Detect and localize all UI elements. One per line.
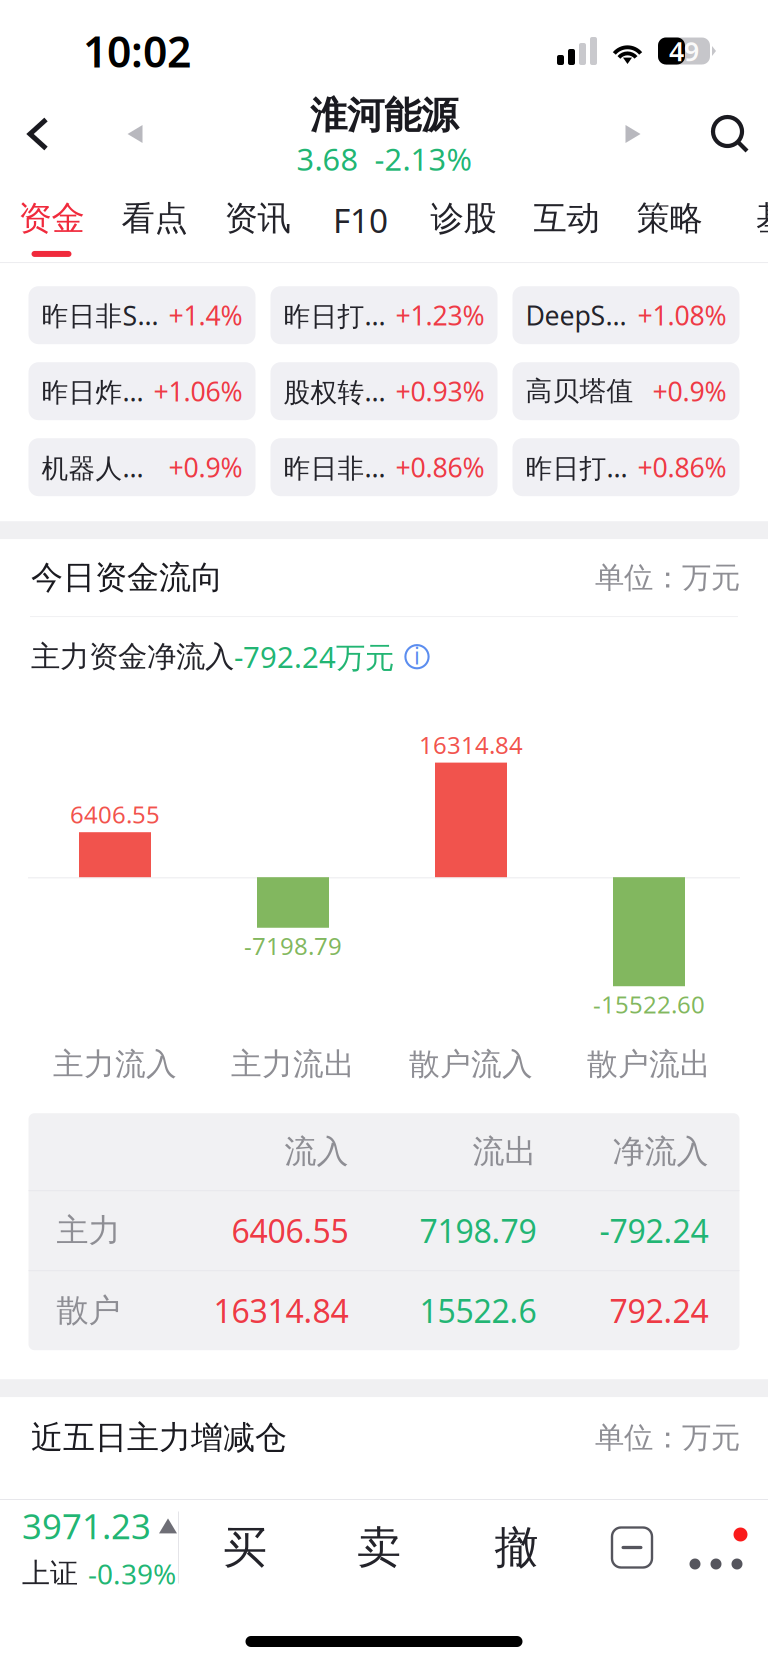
button[interactable]: 更多 bbox=[678, 1500, 756, 1595]
staticText: +0.86% bbox=[395, 449, 484, 485]
staticText: 策略 bbox=[636, 198, 702, 239]
staticText: 机器人概念 bbox=[41, 449, 163, 485]
staticText: +0.93% bbox=[395, 373, 484, 409]
staticText: -15522.60 bbox=[593, 988, 705, 1020]
staticText: 流入 bbox=[284, 1132, 348, 1171]
staticText: 诊股 bbox=[430, 198, 496, 239]
staticText: 看点 bbox=[121, 198, 187, 239]
staticText: DeepS... bbox=[525, 297, 626, 333]
staticText: 今日资金流向 bbox=[31, 558, 223, 597]
staticText: +0.86% bbox=[637, 449, 726, 485]
button[interactable]: 卖 bbox=[311, 1500, 447, 1595]
staticText: +1.08% bbox=[637, 297, 726, 333]
staticText: 昨日打首板... bbox=[283, 297, 390, 333]
button[interactable]: 上一只 bbox=[76, 86, 194, 182]
staticText: 4 bbox=[669, 33, 684, 69]
staticText: 淮河能源 bbox=[310, 93, 458, 139]
staticText: 3.68 -2.13% bbox=[296, 139, 471, 179]
button[interactable]: 股权转让(... bbox=[270, 362, 497, 420]
staticText: 散户流出 bbox=[587, 1045, 711, 1083]
staticText: 3971.23 bbox=[22, 1503, 151, 1549]
button[interactable]: 撤 bbox=[447, 1500, 586, 1595]
button[interactable]: 策略 bbox=[618, 182, 721, 262]
staticText: 16314.84 bbox=[213, 1289, 348, 1332]
staticText: 互动 bbox=[533, 198, 599, 239]
staticText: 昨日非ST... bbox=[283, 449, 390, 485]
button[interactable]: 资讯 bbox=[206, 182, 309, 262]
staticText: 昨日打板表... bbox=[525, 449, 632, 485]
staticText: 昨日炸板股 bbox=[41, 373, 148, 409]
staticText: 散户流入 bbox=[409, 1045, 533, 1083]
staticText: 近五日主力增减仓 bbox=[31, 1418, 287, 1457]
staticText: +1.06% bbox=[153, 373, 242, 409]
staticText: F10 bbox=[333, 198, 388, 242]
button[interactable]: 下一只 bbox=[574, 86, 692, 182]
button[interactable]: 诊股 bbox=[412, 182, 515, 262]
button[interactable]: 昨日炸板股 bbox=[28, 362, 255, 420]
button[interactable]: 机器人概念 bbox=[28, 438, 255, 496]
staticText: 单位：万元 bbox=[595, 560, 740, 596]
button[interactable]: DeepS... bbox=[512, 286, 739, 344]
staticText: 792.24 bbox=[609, 1289, 708, 1332]
staticText: +0.9% bbox=[168, 449, 242, 485]
staticText: 10:02 bbox=[83, 23, 191, 79]
button[interactable]: 资金 bbox=[0, 182, 103, 262]
staticText: 上证 bbox=[22, 1556, 78, 1591]
staticText: 净流入 bbox=[612, 1132, 708, 1171]
button[interactable]: 昨日非ST... bbox=[270, 438, 497, 496]
button[interactable]: 互动 bbox=[515, 182, 618, 262]
staticText: 主力流出 bbox=[231, 1045, 355, 1083]
button[interactable]: 3971.23 bbox=[0, 1500, 178, 1595]
staticText: 卖 bbox=[357, 1520, 401, 1574]
staticText: i bbox=[414, 641, 420, 671]
button[interactable]: 持仓 bbox=[586, 1500, 678, 1595]
button[interactable]: 高贝塔值 bbox=[512, 362, 739, 420]
staticText: 7198.79 bbox=[419, 1209, 536, 1252]
staticText: +1.4% bbox=[168, 297, 242, 333]
staticText: 基 bbox=[756, 198, 768, 239]
staticText: 主力资金净流入 bbox=[31, 639, 234, 675]
staticText: 股权转让(... bbox=[283, 373, 390, 409]
staticText: -792.24万元 bbox=[234, 637, 394, 676]
staticText: 流出 bbox=[472, 1132, 536, 1171]
button[interactable]: 基 bbox=[721, 182, 768, 262]
staticText: 高贝塔值 bbox=[525, 375, 633, 408]
staticText: 主力流入 bbox=[53, 1045, 177, 1083]
button[interactable]: F10 bbox=[309, 182, 412, 262]
staticText: +0.9% bbox=[652, 373, 726, 409]
button[interactable]: 看点 bbox=[103, 182, 206, 262]
staticText: -7198.79 bbox=[244, 930, 342, 962]
button[interactable]: 买 bbox=[179, 1500, 311, 1595]
button[interactable]: 昨日打首板... bbox=[270, 286, 497, 344]
staticText: 6406.55 bbox=[70, 798, 160, 830]
button[interactable]: 返回 bbox=[0, 86, 76, 182]
staticText: 6406.55 bbox=[231, 1209, 348, 1252]
staticText: 9 bbox=[684, 33, 699, 69]
button[interactable]: 搜索 bbox=[692, 86, 768, 182]
staticText: 买 bbox=[223, 1520, 267, 1574]
staticText: -792.24 bbox=[599, 1209, 708, 1252]
staticText: 散户 bbox=[56, 1291, 120, 1330]
staticText: 15522.6 bbox=[419, 1289, 536, 1332]
staticText: 资讯 bbox=[224, 198, 290, 239]
button[interactable]: 昨日打板表... bbox=[512, 438, 739, 496]
staticText: 16314.84 bbox=[419, 729, 523, 761]
staticText: 昨日非ST... bbox=[41, 297, 163, 333]
staticText: +1.23% bbox=[395, 297, 484, 333]
staticText: 主力 bbox=[56, 1211, 120, 1250]
staticText: 资金 bbox=[18, 198, 84, 239]
staticText: -0.39% bbox=[88, 1555, 176, 1592]
button[interactable]: 昨日非ST... bbox=[28, 286, 255, 344]
staticText: 撤 bbox=[494, 1520, 538, 1574]
staticText: 单位：万元 bbox=[595, 1420, 740, 1456]
